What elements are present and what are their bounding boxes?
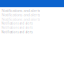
staticText: Notifications and alerts xyxy=(1,12,40,17)
staticText: Notifications and alerts xyxy=(1,26,32,29)
staticText: Notifications and alerts xyxy=(1,30,32,34)
staticText: Notifications and alerts xyxy=(1,16,40,22)
staticText: Notifications and alerts xyxy=(1,22,32,25)
staticText: Notifications and alerts xyxy=(1,8,40,13)
